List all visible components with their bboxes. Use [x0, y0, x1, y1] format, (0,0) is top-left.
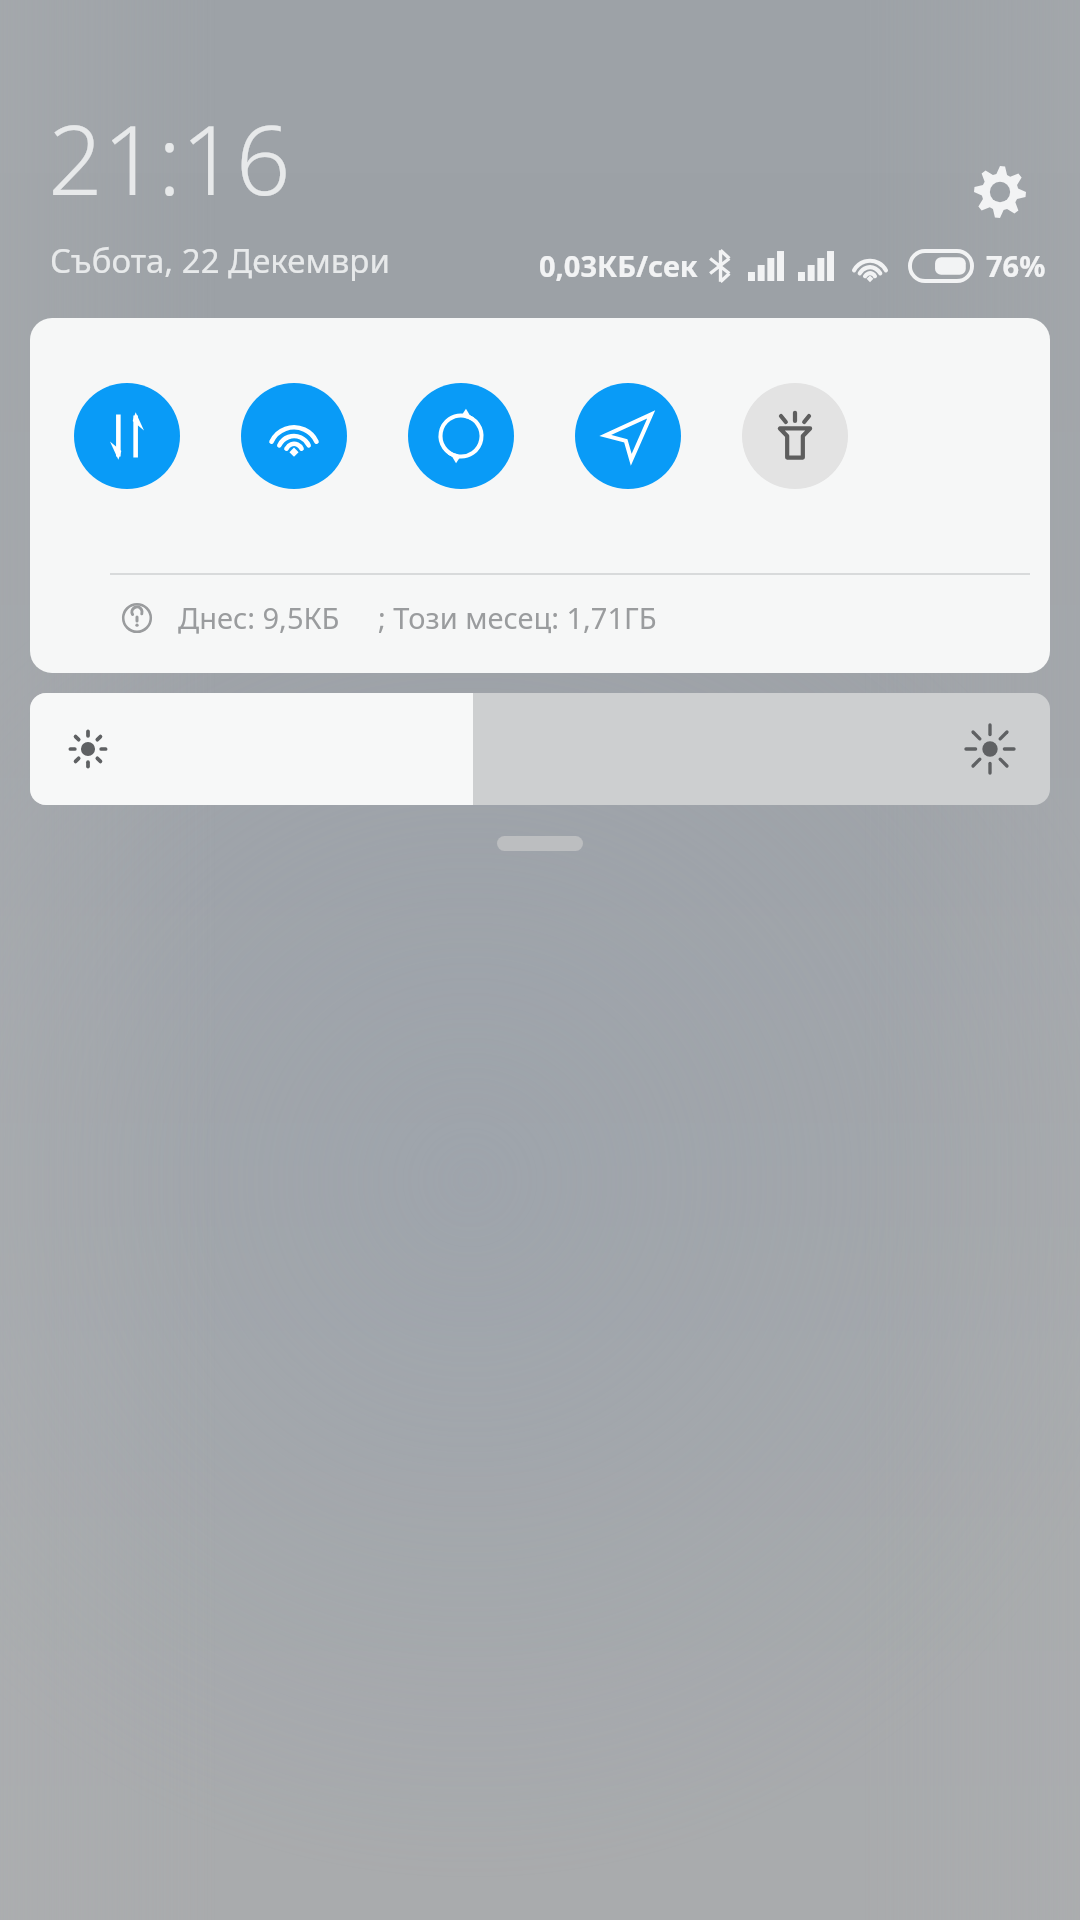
staticText: 0,03КБ/сек [539, 246, 698, 285]
button[interactable]: Location [575, 383, 681, 489]
button[interactable]: Flashlight [742, 383, 848, 489]
button[interactable]: Wi-Fi [241, 383, 347, 489]
button[interactable]: Mobile data [74, 383, 180, 489]
button[interactable]: Днес: 9,5КБ [122, 598, 657, 637]
staticText: 76% [986, 246, 1046, 285]
staticText: Събота, 22 Декември [50, 238, 390, 283]
button[interactable]: Expand [497, 836, 583, 851]
staticText: 21:16 [48, 92, 291, 223]
staticText: ; Този месец: 1,71ГБ [378, 598, 657, 637]
button[interactable]: Settings [968, 160, 1032, 224]
staticText: Днес: 9,5КБ [178, 598, 340, 637]
button[interactable]: Brightness [30, 693, 1050, 805]
button[interactable]: Sync [408, 383, 514, 489]
